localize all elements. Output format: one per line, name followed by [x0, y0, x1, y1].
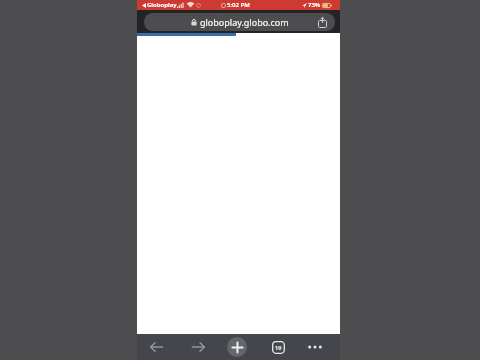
button[interactable]	[190, 339, 206, 355]
staticText: 19	[275, 344, 282, 351]
button[interactable]: globoplay.globo.com	[144, 13, 335, 31]
button[interactable]	[307, 339, 323, 355]
button[interactable]: 19	[270, 339, 286, 355]
staticText: Globoplay	[147, 1, 177, 9]
button[interactable]	[148, 339, 164, 355]
button[interactable]	[227, 337, 247, 357]
staticText: 73%	[308, 1, 321, 9]
staticText: 5:02 PM	[227, 1, 250, 9]
staticText: globoplay.globo.com	[200, 16, 289, 28]
